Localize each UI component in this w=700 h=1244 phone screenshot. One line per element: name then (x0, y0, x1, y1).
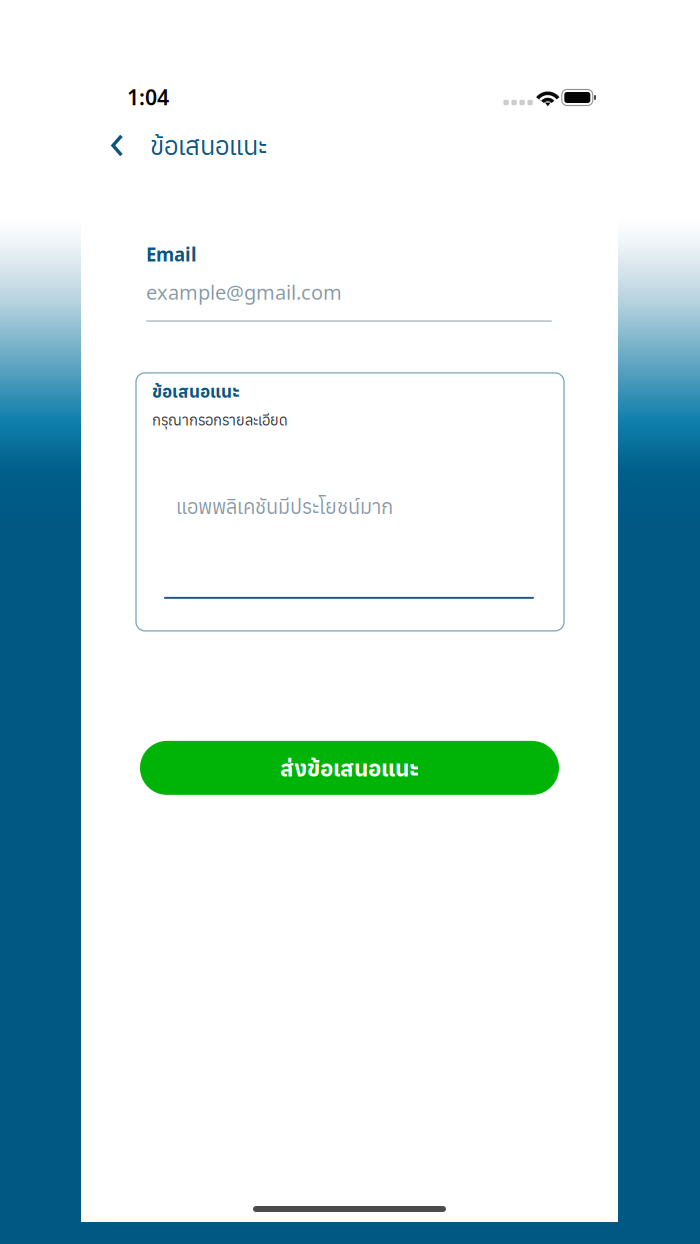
staticText: 1:04 (127, 83, 169, 111)
staticText: ข้อเสนอแนะ (152, 380, 240, 402)
staticText: กรุณากรอกรายละเอียด (152, 410, 288, 429)
staticText: แอพพลิเคชันมีประโยชน์มาก (176, 493, 393, 519)
staticText: example@gmail.com (146, 279, 342, 305)
staticText: ข้อเสนอแนะ (150, 129, 267, 162)
staticText: Email (146, 242, 197, 267)
button[interactable]: ส่งข้อเสนอแนะ (140, 741, 559, 795)
button[interactable]: ข้อเสนอแนะ (81, 122, 285, 169)
staticText: ส่งข้อเสนอแนะ (280, 753, 419, 783)
